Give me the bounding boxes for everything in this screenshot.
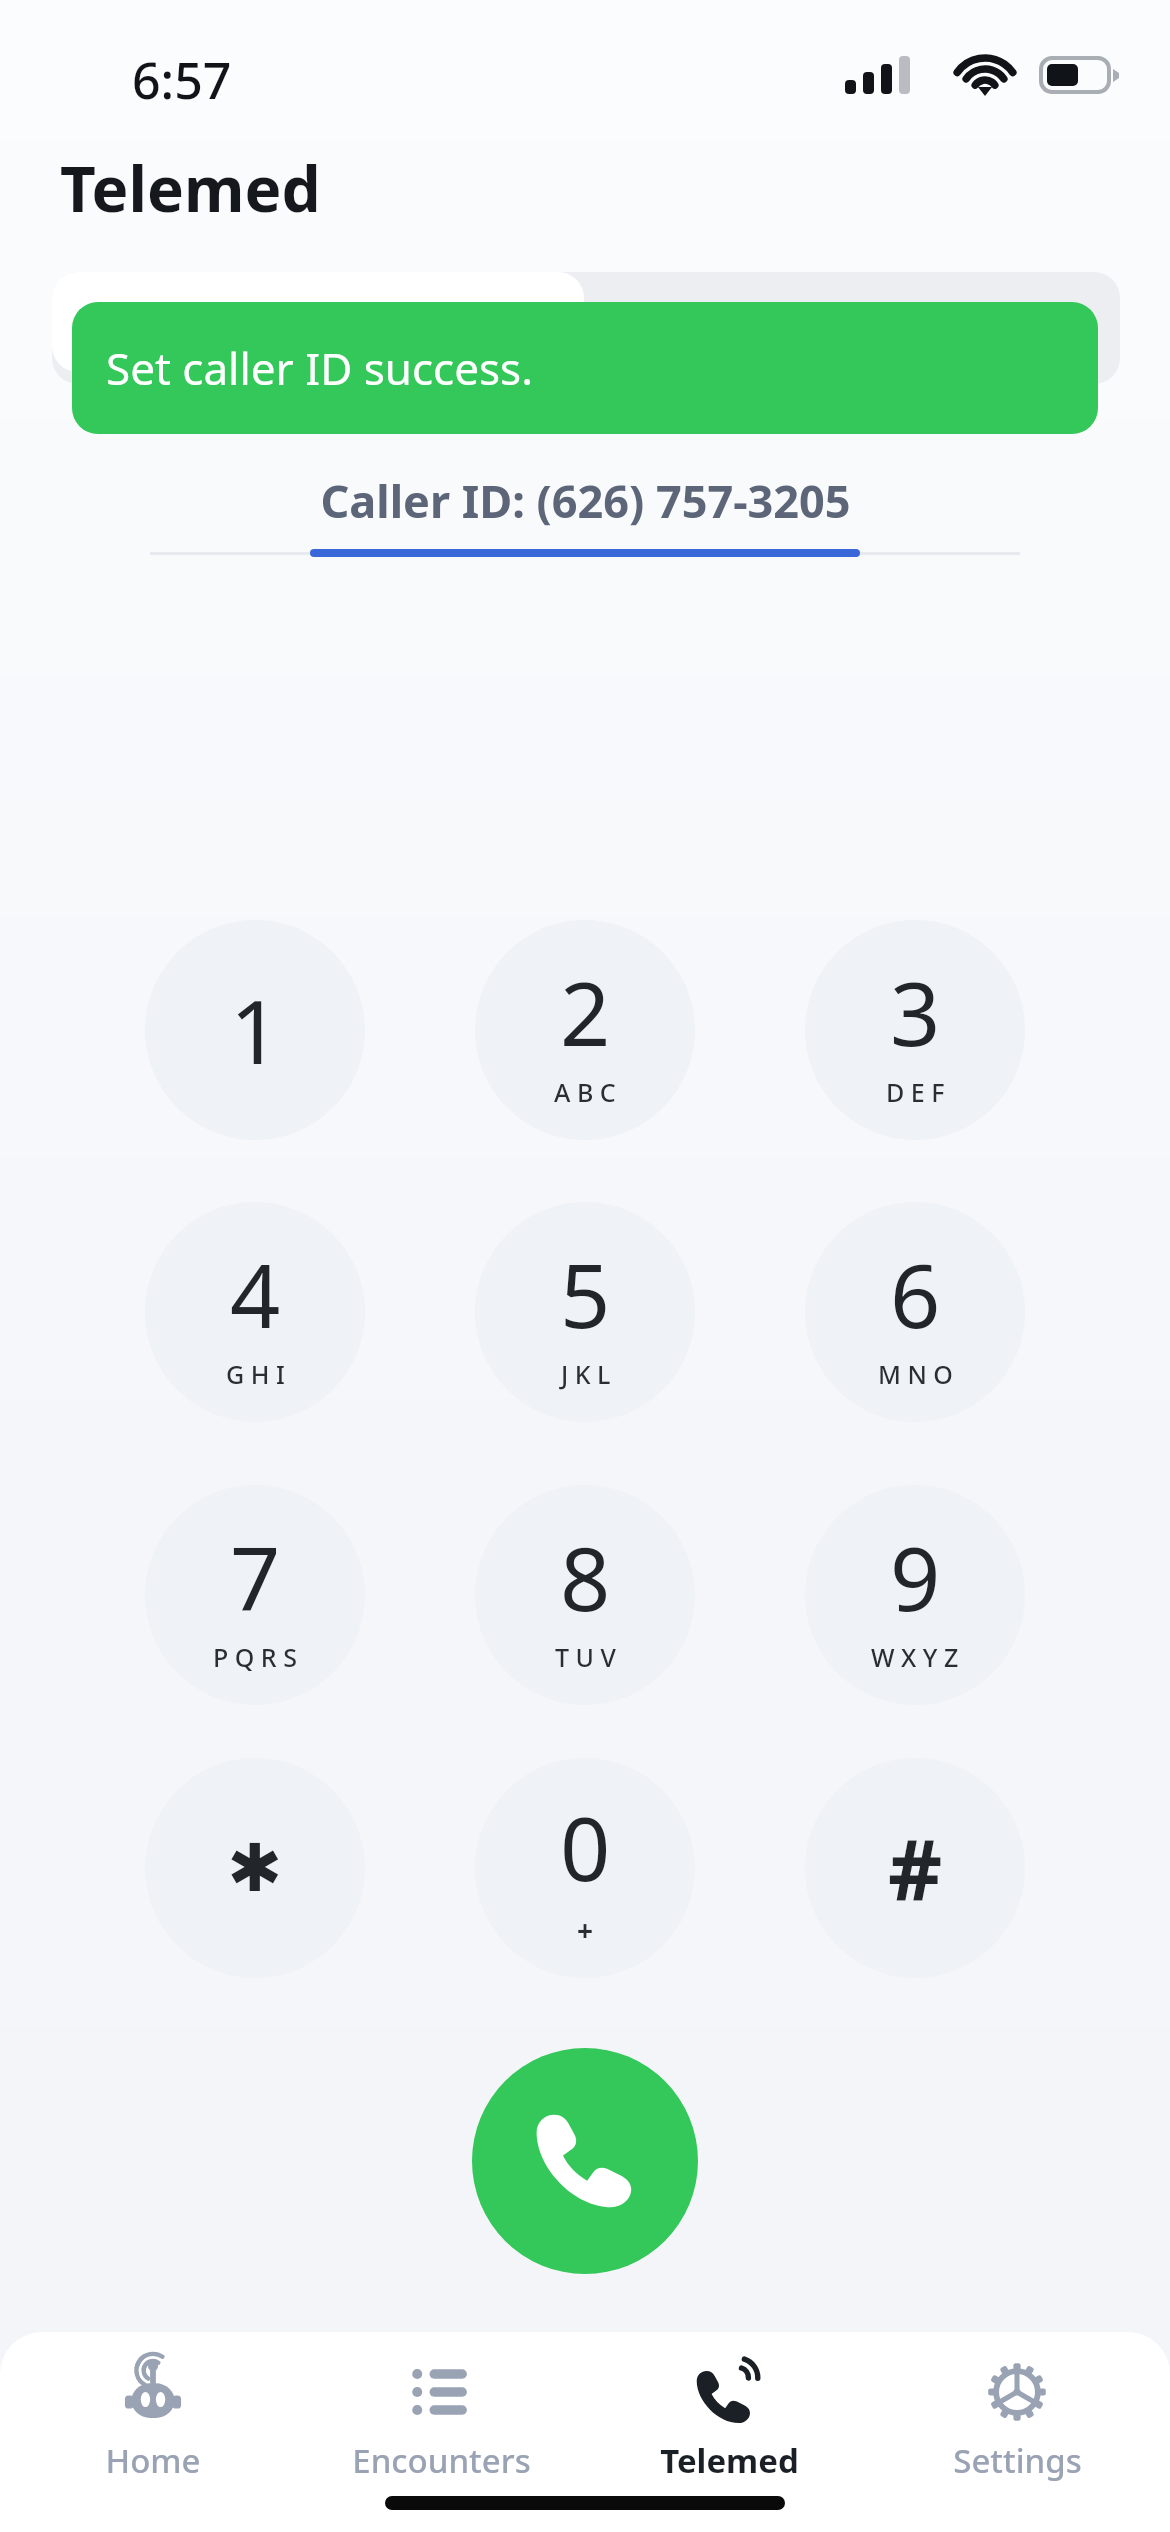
staticText: Encounters: [352, 2438, 531, 2483]
staticText: 6: [890, 1234, 941, 1354]
staticText: 9: [890, 1517, 941, 1637]
button[interactable]: 9: [805, 1485, 1025, 1705]
staticText: 7: [230, 1517, 281, 1637]
staticText: 0: [560, 1787, 611, 1907]
staticText: P Q R S: [213, 1640, 297, 1674]
staticText: 3: [890, 952, 941, 1072]
staticText: 6:57: [132, 46, 232, 114]
staticText: Set caller ID success.: [106, 338, 533, 398]
staticText: 8: [560, 1517, 611, 1637]
staticText: Telemed: [660, 2438, 799, 2483]
button[interactable]: 8: [475, 1485, 695, 1705]
staticText: 5: [560, 1234, 611, 1354]
button[interactable]: Set caller ID success.: [72, 302, 1098, 434]
button[interactable]: 0: [475, 1758, 695, 1978]
staticText: M N O: [878, 1357, 953, 1391]
staticText: #: [888, 1811, 943, 1925]
staticText: +: [577, 1911, 594, 1949]
button[interactable]: Call: [472, 2048, 698, 2274]
staticText: W X Y Z: [871, 1640, 959, 1674]
button[interactable]: Settings: [882, 2356, 1152, 2483]
staticText: Caller ID: (626) 757-3205: [320, 470, 851, 531]
button[interactable]: Caller ID: (626) 757-3205: [0, 470, 1170, 556]
button[interactable]: 5: [475, 1202, 695, 1422]
staticText: A B C: [554, 1075, 616, 1109]
staticText: T U V: [555, 1640, 616, 1674]
button[interactable]: 1: [145, 920, 365, 1140]
staticText: G H I: [226, 1357, 285, 1391]
staticText: ✱: [227, 1830, 283, 1907]
button[interactable]: 2: [475, 920, 695, 1140]
button[interactable]: ✱: [145, 1758, 365, 1978]
staticText: 4: [230, 1234, 281, 1354]
staticText: Settings: [953, 2438, 1082, 2483]
staticText: Home: [105, 2438, 201, 2483]
staticText: 2: [560, 952, 611, 1072]
staticText: 1: [230, 970, 281, 1090]
button[interactable]: 7: [145, 1485, 365, 1705]
button[interactable]: 3: [805, 920, 1025, 1140]
button[interactable]: Encounters: [306, 2356, 576, 2483]
staticText: Telemed: [60, 146, 321, 230]
button[interactable]: #: [805, 1758, 1025, 1978]
staticText: J K L: [561, 1357, 611, 1391]
button[interactable]: Telemed: [594, 2356, 864, 2483]
staticText: D E F: [886, 1075, 945, 1109]
button[interactable]: 4: [145, 1202, 365, 1422]
button[interactable]: 6: [805, 1202, 1025, 1422]
button[interactable]: Home: [18, 2356, 288, 2483]
